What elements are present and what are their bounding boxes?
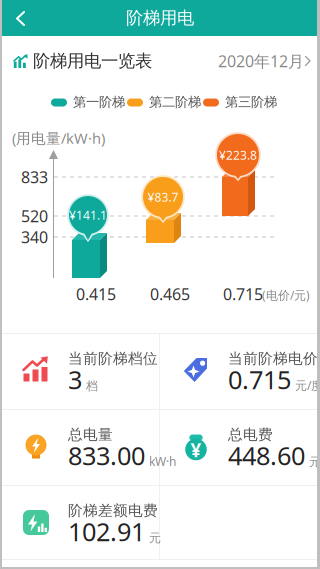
button[interactable]: 返回	[8, 6, 32, 30]
staticText: 833.00	[68, 439, 145, 472]
button[interactable]: 当前阶梯电价	[160, 334, 320, 409]
staticText: 3	[68, 363, 82, 396]
staticText: 448.60	[228, 439, 305, 472]
staticText: 第二阶梯	[149, 94, 201, 110]
staticText: 档	[86, 379, 98, 393]
staticText: 第一阶梯	[73, 94, 125, 110]
staticText: 102.91	[68, 515, 145, 548]
staticText: 833	[21, 166, 48, 188]
button[interactable]: 总电量	[0, 410, 159, 485]
staticText: 阶梯用电一览表	[33, 50, 152, 72]
button[interactable]: ¥	[160, 410, 320, 485]
button[interactable]: 阶梯差额电费	[0, 486, 159, 559]
staticText: 0.715	[228, 363, 291, 396]
staticText: ¥	[190, 438, 201, 462]
staticText: 0.465	[150, 283, 190, 305]
staticText: 当前阶梯电价	[228, 349, 318, 367]
staticText: 阶梯用电	[126, 7, 194, 29]
button[interactable]: 当前阶梯档位	[0, 334, 159, 409]
staticText: 总电量	[68, 425, 113, 443]
staticText: 340	[21, 226, 48, 248]
staticText: (电价/元)	[262, 287, 310, 303]
staticText: (用电量/kW·h)	[12, 128, 105, 148]
staticText: ¥223.8	[219, 147, 257, 163]
staticText: 总电费	[228, 425, 273, 443]
staticText: 阶梯差额电费	[68, 501, 158, 519]
staticText: 2020年12月	[218, 50, 304, 72]
staticText: 第三阶梯	[225, 94, 277, 110]
staticText: 元	[149, 531, 161, 545]
staticText: 元/度	[295, 377, 320, 393]
staticText: 0.715	[223, 283, 263, 305]
staticText: 元	[309, 455, 320, 469]
staticText: ¥83.7	[147, 189, 178, 205]
staticText: 520	[21, 205, 48, 227]
staticText: 当前阶梯档位	[68, 349, 158, 367]
staticText: kW·h	[149, 453, 176, 469]
staticText: 0.415	[76, 283, 116, 305]
button[interactable]: 2020年12月	[222, 50, 308, 72]
staticText: ¥141.1	[69, 207, 107, 223]
